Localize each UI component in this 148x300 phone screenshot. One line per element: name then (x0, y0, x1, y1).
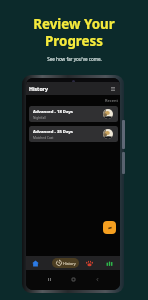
button[interactable]: Menu (108, 84, 117, 93)
staticText: Advanced - 18 Days (33, 109, 73, 115)
staticText: Recent (105, 98, 118, 103)
button[interactable]: Home (26, 256, 45, 270)
button[interactable]: Advanced - 35 Days (29, 126, 118, 142)
button[interactable]: Add (103, 221, 116, 234)
button[interactable]: Back (92, 274, 102, 284)
button[interactable]: Stats (99, 256, 120, 270)
staticText: Nightfall (33, 116, 46, 120)
staticText: Matched Cast (33, 136, 54, 140)
button[interactable]: Home (68, 274, 78, 284)
button[interactable]: Advanced - 18 Days (29, 106, 118, 122)
staticText: Review Your Progress (33, 15, 115, 50)
button[interactable]: History (52, 258, 79, 268)
button[interactable]: Recents (44, 274, 54, 284)
staticText: Advanced - 35 Days (33, 129, 73, 135)
staticText: History (63, 261, 76, 266)
staticText: History (29, 85, 48, 92)
staticText: See how far you've come. (47, 56, 102, 62)
button[interactable]: Pets (79, 256, 99, 270)
